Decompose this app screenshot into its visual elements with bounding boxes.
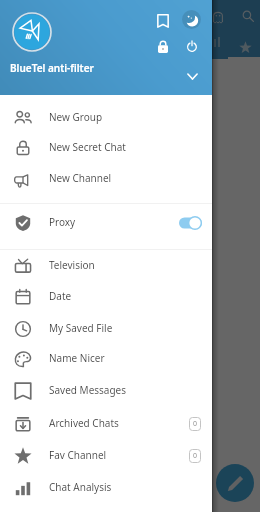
staticText: My Saved File [49, 321, 113, 335]
button[interactable]: Bookmarks [152, 10, 174, 32]
staticText: Television [49, 258, 95, 272]
button[interactable]: Chat Analysis [0, 472, 212, 503]
button[interactable]: Proxy [0, 207, 212, 238]
staticText: Archived Chats [49, 416, 119, 430]
staticText: Name Nicer [49, 351, 105, 365]
button[interactable]: Night mode [182, 10, 201, 29]
button[interactable]: New Secret Chat [0, 132, 212, 163]
staticText: New Secret Chat [49, 140, 126, 154]
button[interactable]: All chats [208, 35, 222, 49]
staticText: New Channel [49, 171, 112, 185]
staticText: Saved Messages [49, 383, 127, 397]
staticText: New Group [49, 110, 103, 124]
button[interactable]: Ghost mode [206, 5, 229, 28]
button[interactable]: New Channel [0, 163, 212, 194]
button[interactable]: My Saved File [0, 313, 212, 344]
button[interactable]: Fav Channel [0, 440, 212, 471]
button[interactable]: Exit [181, 35, 203, 57]
button[interactable]: Television [0, 250, 212, 281]
button[interactable]: Expand accounts [182, 66, 202, 86]
button[interactable]: Archived Chats [0, 408, 212, 439]
staticText: 0 [193, 451, 198, 461]
button[interactable]: Passcode lock [152, 35, 174, 57]
staticText: BlueTel anti-filter [10, 61, 94, 75]
button[interactable]: New Group [0, 102, 212, 133]
staticText: 0 [193, 419, 198, 429]
staticText: Fav Channel [49, 448, 107, 462]
staticText: Proxy [49, 215, 76, 229]
button[interactable]: Date [0, 281, 212, 312]
button[interactable]: Name Nicer [0, 343, 212, 374]
staticText: Date [49, 289, 72, 303]
button[interactable]: Profile [12, 12, 52, 52]
button[interactable]: Favourites [234, 36, 256, 58]
button[interactable]: Search [236, 4, 259, 27]
button[interactable]: New message [216, 464, 254, 502]
button[interactable]: Saved Messages [0, 375, 212, 406]
staticText: Chat Analysis [49, 480, 112, 494]
